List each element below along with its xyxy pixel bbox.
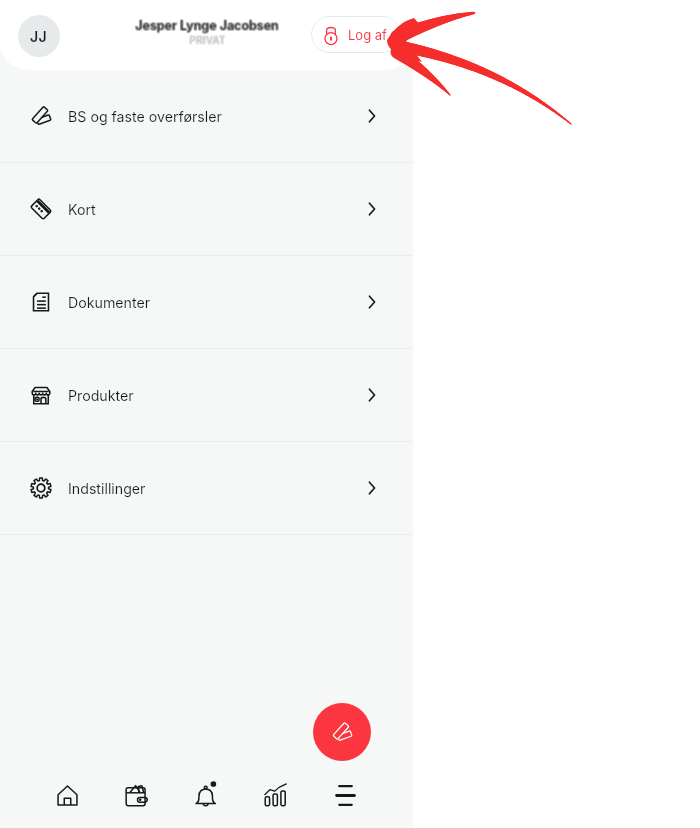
staticText: Jesper Lynge Jacobsen <box>136 17 280 32</box>
staticText: Produkter <box>68 387 134 404</box>
staticText: PRIVAT <box>190 35 227 47</box>
button[interactable]: JJ <box>18 15 60 57</box>
staticText: Jesper Lynge Jacobsen <box>135 17 279 32</box>
staticText: PRIVAT <box>189 33 226 45</box>
button[interactable]: Produkter <box>0 349 413 441</box>
staticText: PRIVAT <box>188 34 225 46</box>
staticText: Jesper Lynge Jacobsen <box>136 19 280 34</box>
staticText: Jesper Lynge Jacobsen <box>134 18 278 33</box>
staticText: JJ <box>30 28 48 45</box>
button[interactable]: BS og faste overførsler <box>0 70 413 162</box>
staticText: PRIVAT <box>188 35 225 47</box>
staticText: Jesper Lynge Jacobsen <box>136 18 280 33</box>
button[interactable]: Kort <box>0 163 413 255</box>
staticText: PRIVAT <box>189 34 226 46</box>
button[interactable]: Log af <box>311 16 401 53</box>
staticText: PRIVAT <box>190 33 227 45</box>
staticText: Kort <box>68 201 96 218</box>
button[interactable]: Indstillinger <box>0 442 413 534</box>
button[interactable]: Hjem <box>42 770 92 820</box>
staticText: Jesper Lynge Jacobsen <box>134 17 278 32</box>
staticText: Indstillinger <box>68 480 146 497</box>
staticText: Jesper Lynge Jacobsen <box>134 19 278 34</box>
staticText: PRIVAT <box>189 35 226 47</box>
staticText: PRIVAT <box>190 34 227 46</box>
button[interactable]: Menu <box>320 770 370 820</box>
staticText: Dokumenter <box>68 294 151 311</box>
button[interactable]: Budget <box>250 770 300 820</box>
button[interactable]: Notifikationer <box>181 770 231 820</box>
staticText: BS og faste overførsler <box>68 108 222 125</box>
staticText: Jesper Lynge Jacobsen <box>135 18 279 33</box>
staticText: PRIVAT <box>188 33 225 45</box>
button[interactable]: Dokumenter <box>0 256 413 348</box>
staticText: Jesper Lynge Jacobsen <box>135 19 279 34</box>
staticText: Log af <box>348 27 387 43</box>
button[interactable]: Ny betaling <box>313 703 371 761</box>
button[interactable]: Konti <box>112 770 162 820</box>
